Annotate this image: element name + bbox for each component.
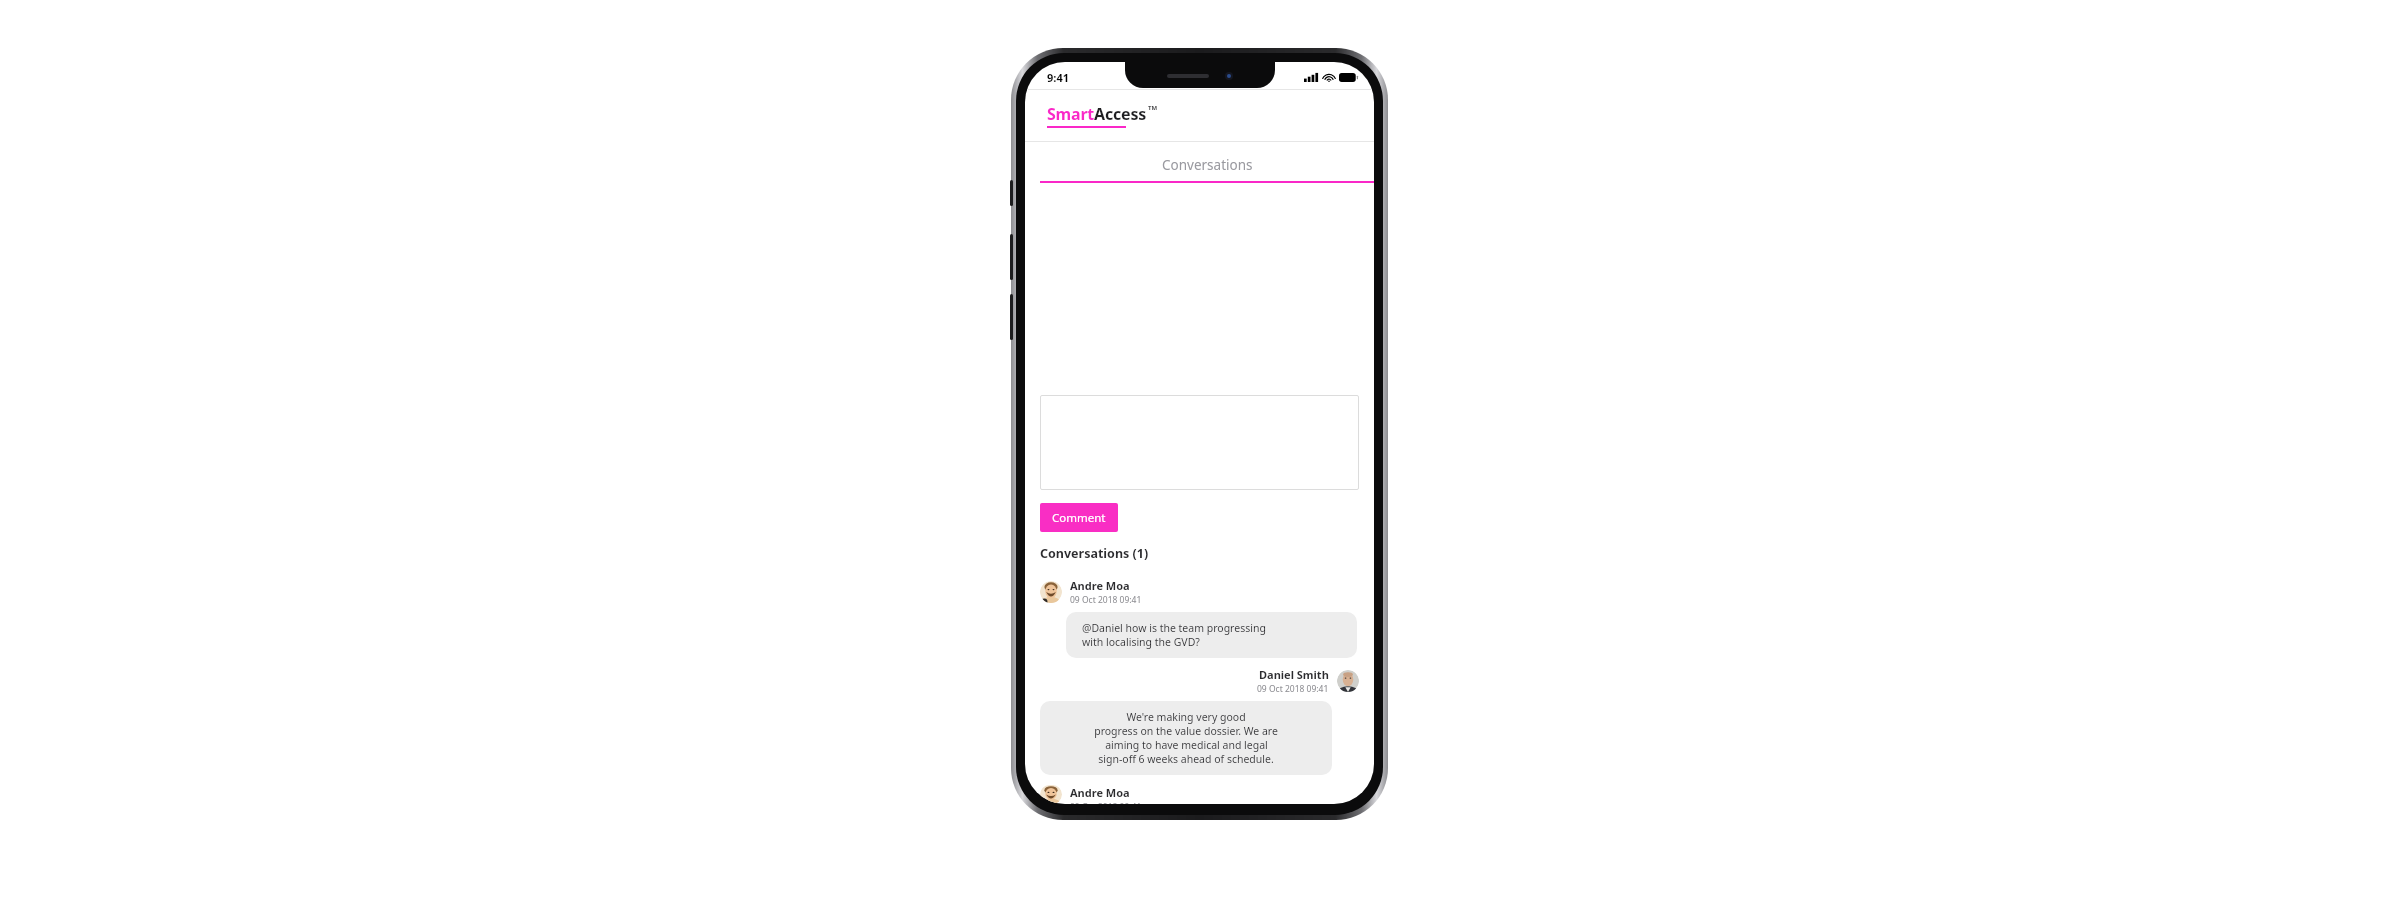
staticText: with localising the GVD? [1082, 635, 1200, 649]
staticText: Daniel Smith [1259, 667, 1329, 682]
staticText: Conversations (1) [1040, 545, 1149, 562]
staticText: aiming to have medical and legal [1105, 738, 1268, 752]
staticText: Andre Moa [1070, 578, 1130, 593]
button[interactable]: Comment [1040, 503, 1118, 532]
staticText: 09 Oct 2018 09:41 [1070, 801, 1142, 804]
button[interactable]: @Daniel how is the team progressing [1066, 612, 1357, 658]
button[interactable]: Andre Moa [1040, 785, 1374, 804]
staticText: @Daniel how is the team progressing [1082, 621, 1266, 635]
staticText: 9:41 [1047, 70, 1069, 85]
staticText: Conversations [1162, 156, 1253, 174]
staticText: Andre Moa [1070, 785, 1130, 800]
button[interactable]: Conversations [1040, 156, 1374, 183]
button[interactable] [1040, 395, 1359, 490]
staticText: TM [1148, 104, 1158, 112]
staticText: 09 Oct 2018 09:41 [1070, 594, 1142, 606]
staticText: Comment [1052, 510, 1106, 526]
button[interactable]: We're making very good [1040, 701, 1332, 775]
staticText: SmartAccess [1047, 103, 1147, 125]
staticText: 09 Oct 2018 09:41 [1257, 683, 1329, 695]
staticText: We're making very good [1126, 710, 1246, 724]
button[interactable]: Daniel Smith [1025, 667, 1359, 695]
button[interactable]: Andre Moa [1040, 578, 1374, 606]
staticText: sign-off 6 weeks ahead of schedule. [1098, 752, 1274, 766]
staticText: progress on the value dossier. We are [1094, 724, 1278, 738]
